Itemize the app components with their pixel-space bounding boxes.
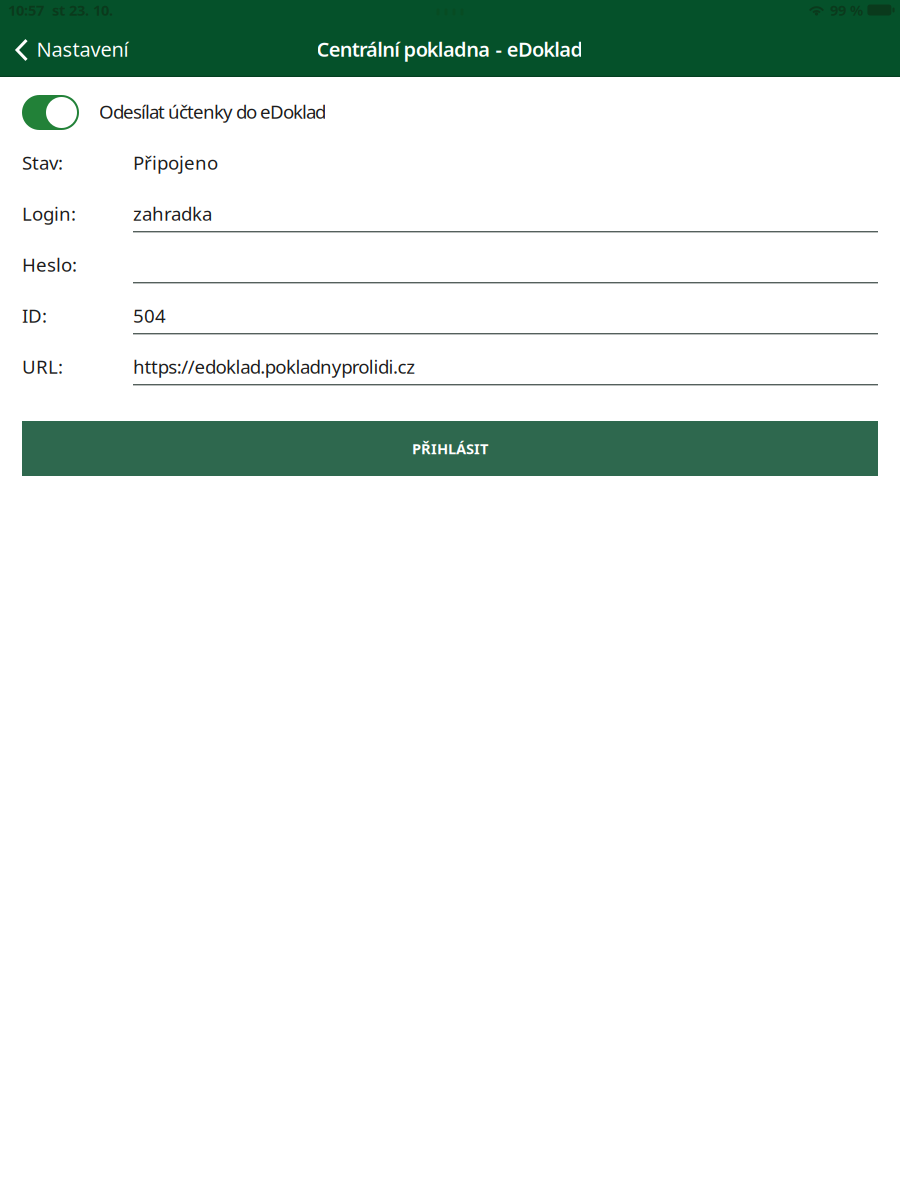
staticText: ID: (22, 303, 47, 328)
staticText: https://edoklad.pokladnyprolidi.cz (133, 354, 415, 379)
staticText: zahradka (133, 201, 212, 226)
staticText: Připojeno (133, 150, 218, 175)
staticText: Odesílat účtenky do eDoklad (99, 99, 326, 124)
staticText: 504 (133, 303, 166, 328)
staticText: Centrální pokladna - eDoklad (317, 36, 583, 62)
button[interactable]: Login: (133, 201, 878, 233)
button[interactable]: URL: (133, 354, 878, 386)
staticText: Heslo: (22, 252, 77, 277)
staticText: Nastavení (36, 36, 128, 62)
button[interactable]: PŘIHLÁSIT (22, 421, 878, 476)
staticText: 10:57 st 23. 10. (8, 0, 113, 20)
staticText: Login: (22, 201, 76, 226)
button[interactable]: ID: (133, 303, 878, 335)
button[interactable]: Heslo: (133, 252, 878, 284)
button[interactable]: Odesílat účtenky do eDoklad (22, 95, 79, 130)
button[interactable]: Nastavení (0, 30, 142, 70)
staticText: Stav: (22, 150, 63, 175)
staticText: URL: (22, 354, 63, 379)
staticText: 99 % (830, 0, 863, 20)
staticText: PŘIHLÁSIT (412, 439, 488, 458)
